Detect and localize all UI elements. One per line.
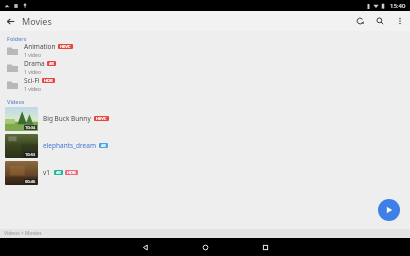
button[interactable]: Sci-Fi [0, 76, 410, 93]
button[interactable]: Drama [0, 59, 410, 76]
staticText: 4K [49, 61, 54, 66]
staticText: 15:40 [390, 2, 406, 10]
staticText: v1 [43, 168, 51, 177]
staticText: Videos > Movies [4, 230, 42, 237]
staticText: Videos [7, 98, 25, 105]
button[interactable]: Home [175, 238, 235, 256]
staticText: HEVC [96, 116, 107, 121]
button[interactable]: Animation [0, 42, 410, 59]
staticText: 1 video [24, 69, 41, 76]
button[interactable]: 10:34 [0, 105, 410, 132]
staticText: Movies [22, 15, 52, 27]
button[interactable]: Search [370, 11, 390, 31]
button[interactable]: Play [378, 199, 400, 221]
staticText: 1 video [24, 52, 41, 59]
staticText: HEVC [60, 44, 71, 49]
staticText: elephants_dream [43, 141, 96, 150]
button[interactable]: More options [390, 11, 410, 31]
staticText: Sci-Fi [24, 76, 40, 85]
button[interactable]: Back [0, 11, 20, 31]
staticText: Animation [24, 42, 56, 51]
button[interactable]: Refresh [350, 11, 370, 31]
staticText: Drama [24, 59, 45, 68]
staticText: 10:53 [25, 152, 36, 157]
staticText: Big Buck Bunny [43, 114, 91, 123]
staticText: 00:46 [25, 179, 36, 184]
button[interactable]: Videos > Movies [0, 229, 410, 238]
button[interactable]: 00:46 [0, 159, 410, 186]
staticText: HDR [67, 170, 76, 175]
staticText: 1 video [24, 86, 41, 93]
staticText: 4K [101, 143, 106, 148]
button[interactable]: Back [115, 238, 175, 256]
button[interactable]: 10:53 [0, 132, 410, 159]
staticText: 4K [56, 170, 61, 175]
staticText: Folders [7, 35, 27, 42]
button[interactable]: Recent apps [235, 238, 295, 256]
staticText: HDR [44, 78, 53, 83]
staticText: 10:34 [25, 125, 36, 130]
